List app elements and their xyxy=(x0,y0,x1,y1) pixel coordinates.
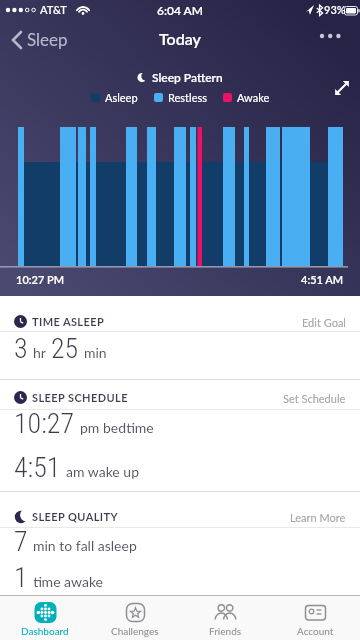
staticText: Awake xyxy=(237,91,270,104)
staticText: 4:51 AM xyxy=(301,273,344,286)
staticText: Learn More xyxy=(290,511,346,524)
button[interactable]: Sleep xyxy=(4,24,94,54)
staticText: min xyxy=(84,344,107,361)
staticText: 6:04 AM xyxy=(157,3,203,17)
button[interactable]: Friends xyxy=(180,596,270,640)
staticText: Restless xyxy=(168,91,207,104)
button[interactable]: Challenges xyxy=(90,596,180,640)
staticText: 1 xyxy=(14,561,28,594)
staticText: pm bedtime xyxy=(80,419,154,436)
staticText: Sleep Pattern xyxy=(152,70,223,84)
staticText: SLEEP QUALITY xyxy=(32,510,118,523)
button[interactable] xyxy=(330,76,354,100)
button[interactable]: Account xyxy=(270,596,360,640)
staticText: 10:27 xyxy=(14,407,75,440)
staticText: 10:27 PM xyxy=(16,273,65,286)
staticText: Set Schedule xyxy=(283,392,346,405)
staticText: 3 xyxy=(14,332,28,365)
staticText: 7 xyxy=(14,525,28,558)
staticText: TIME ASLEEP xyxy=(32,315,105,328)
staticText: min to fall asleep xyxy=(33,537,137,554)
button[interactable]: Edit Goal xyxy=(302,316,346,329)
staticText: Sleep xyxy=(27,29,68,49)
staticText: am wake up xyxy=(66,463,139,480)
staticText: time awake xyxy=(33,573,104,590)
staticText: Today xyxy=(159,29,201,48)
staticText: Asleep xyxy=(105,91,138,104)
staticText: 4:51 xyxy=(14,451,61,484)
button[interactable]: Learn More xyxy=(290,511,346,524)
button[interactable]: Dashboard xyxy=(0,596,90,640)
staticText: Challenges xyxy=(111,625,159,637)
staticText: Friends xyxy=(209,625,242,637)
button[interactable]: Set Schedule xyxy=(283,392,346,405)
staticText: 93% xyxy=(324,3,346,16)
staticText: Account xyxy=(297,625,334,637)
staticText: Edit Goal xyxy=(302,316,346,329)
staticText: 25 xyxy=(51,332,79,365)
staticText: hr xyxy=(33,344,46,361)
button[interactable] xyxy=(314,26,350,50)
staticText: SLEEP SCHEDULE xyxy=(32,391,128,404)
staticText: Dashboard xyxy=(21,625,69,637)
staticText: AT&T xyxy=(40,3,67,16)
